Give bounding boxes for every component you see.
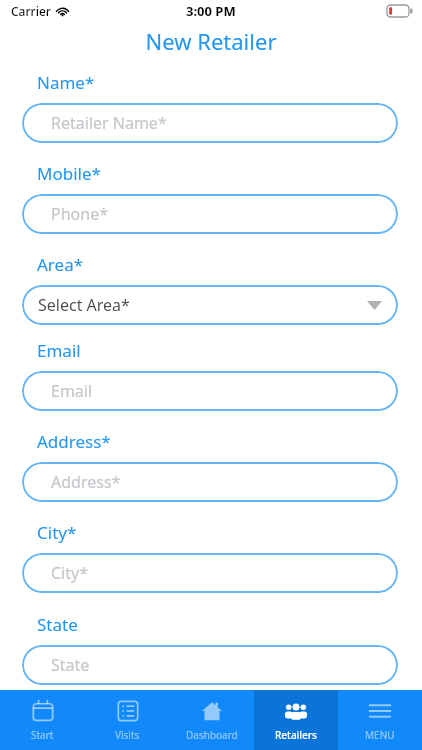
button[interactable]: State bbox=[22, 645, 398, 685]
staticText: Area* bbox=[37, 253, 84, 276]
button[interactable]: City* bbox=[22, 553, 398, 593]
staticText: Start bbox=[31, 728, 54, 742]
staticText: Email bbox=[51, 380, 93, 402]
other: Menu bbox=[369, 700, 391, 722]
other: Dashboard bbox=[201, 700, 223, 722]
button[interactable]: Phone* bbox=[22, 194, 398, 234]
staticText: State bbox=[37, 613, 78, 636]
button[interactable]: Dashboard bbox=[170, 690, 254, 750]
staticText: Dashboard bbox=[186, 728, 238, 742]
button[interactable]: Visits bbox=[85, 690, 170, 750]
staticText: City* bbox=[51, 562, 88, 584]
staticText: Select Area* bbox=[38, 294, 130, 316]
button[interactable]: Select Area* bbox=[22, 285, 398, 325]
button[interactable]: Menu bbox=[338, 690, 422, 750]
staticText: Mobile* bbox=[37, 162, 101, 185]
staticText: Carrier bbox=[11, 3, 51, 19]
button[interactable]: Email bbox=[22, 371, 398, 411]
staticText: Name* bbox=[37, 71, 95, 94]
other: Visits bbox=[117, 700, 139, 722]
button[interactable]: Start bbox=[0, 690, 85, 750]
staticText: State bbox=[51, 654, 90, 676]
staticText: Retailers bbox=[275, 728, 317, 742]
staticText: Address* bbox=[37, 430, 111, 453]
other: Retailers bbox=[285, 700, 307, 722]
staticText: City* bbox=[37, 521, 77, 544]
other: Start bbox=[32, 700, 54, 722]
staticText: Visits bbox=[115, 728, 140, 742]
button[interactable]: Address* bbox=[22, 462, 398, 502]
button[interactable]: Retailer Name* bbox=[22, 103, 398, 143]
staticText: Email bbox=[37, 339, 81, 362]
staticText: Address* bbox=[51, 471, 121, 493]
staticText: Phone* bbox=[51, 203, 108, 225]
staticText: 3:00 PM bbox=[186, 2, 236, 20]
button[interactable]: Retailers bbox=[254, 690, 338, 750]
staticText: Retailer Name* bbox=[51, 112, 167, 134]
staticText: MENU bbox=[365, 728, 395, 742]
staticText: New Retailer bbox=[0, 26, 422, 56]
